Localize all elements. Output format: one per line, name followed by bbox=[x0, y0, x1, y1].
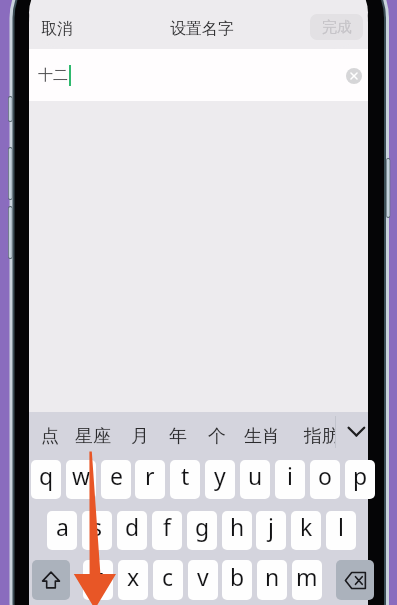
button[interactable]: y bbox=[205, 460, 235, 499]
staticText: o bbox=[318, 460, 332, 491]
button[interactable]: 生肖 bbox=[239, 419, 284, 453]
button[interactable]: v bbox=[188, 560, 218, 600]
button[interactable]: i bbox=[275, 460, 305, 499]
staticText: g bbox=[195, 511, 210, 542]
staticText: p bbox=[353, 460, 368, 491]
button[interactable]: u bbox=[240, 460, 270, 499]
button[interactable]: g bbox=[187, 511, 217, 550]
staticText: l bbox=[338, 511, 344, 542]
button[interactable]: r bbox=[135, 460, 165, 499]
button[interactable]: m bbox=[292, 560, 322, 600]
button[interactable]: l bbox=[326, 511, 356, 550]
staticText: y bbox=[214, 460, 226, 491]
button[interactable]: t bbox=[170, 460, 200, 499]
staticText: 指肪 bbox=[304, 425, 335, 448]
button[interactable]: 指肪 bbox=[299, 419, 335, 453]
button[interactable]: Backspace bbox=[336, 560, 374, 600]
staticText: w bbox=[72, 460, 91, 491]
staticText: f bbox=[163, 511, 171, 542]
button[interactable]: 年 bbox=[164, 419, 192, 453]
staticText: 完成 bbox=[322, 18, 352, 37]
staticText: h bbox=[230, 511, 245, 542]
staticText: q bbox=[39, 460, 54, 491]
staticText: r bbox=[145, 460, 155, 491]
button[interactable]: f bbox=[152, 511, 182, 550]
staticText: 设置名字 bbox=[170, 19, 234, 39]
staticText: 个 bbox=[208, 425, 226, 448]
staticText: i bbox=[287, 460, 293, 491]
button[interactable]: j bbox=[256, 511, 286, 550]
button[interactable]: s bbox=[82, 511, 112, 550]
button[interactable]: c bbox=[153, 560, 183, 600]
staticText: e bbox=[110, 460, 123, 491]
button[interactable]: p bbox=[345, 460, 375, 499]
button[interactable]: e bbox=[101, 460, 131, 499]
staticText: n bbox=[265, 561, 280, 592]
button[interactable]: Collapse candidates bbox=[340, 414, 373, 454]
staticText: 十二 bbox=[38, 66, 68, 85]
button[interactable]: Clear text bbox=[346, 68, 362, 84]
staticText: 星座 bbox=[75, 425, 111, 448]
staticText: m bbox=[296, 561, 318, 592]
button[interactable]: h bbox=[222, 511, 252, 550]
button[interactable]: 完成 bbox=[310, 14, 363, 40]
staticText: k bbox=[300, 511, 313, 542]
staticText: z bbox=[93, 561, 104, 592]
button[interactable]: z bbox=[83, 560, 113, 600]
button[interactable]: w bbox=[66, 460, 96, 499]
staticText: d bbox=[125, 511, 140, 542]
staticText: 取消 bbox=[41, 19, 73, 39]
button[interactable]: k bbox=[291, 511, 321, 550]
staticText: j bbox=[268, 511, 274, 542]
button[interactable]: x bbox=[118, 560, 148, 600]
button[interactable]: 月 bbox=[126, 419, 154, 453]
staticText: v bbox=[197, 561, 209, 592]
button[interactable]: n bbox=[257, 560, 287, 600]
button[interactable]: 个 bbox=[203, 419, 231, 453]
staticText: b bbox=[230, 561, 245, 592]
button[interactable]: a bbox=[47, 511, 77, 550]
staticText: s bbox=[91, 511, 103, 542]
staticText: u bbox=[248, 460, 263, 491]
button[interactable]: q bbox=[31, 460, 61, 499]
button[interactable]: o bbox=[310, 460, 340, 499]
staticText: 点 bbox=[41, 425, 59, 448]
staticText: t bbox=[181, 460, 190, 491]
button[interactable]: 取消 bbox=[37, 15, 77, 42]
button[interactable]: b bbox=[222, 560, 252, 600]
staticText: x bbox=[127, 561, 140, 592]
button[interactable]: 点 bbox=[34, 419, 65, 453]
staticText: c bbox=[162, 561, 174, 592]
staticText: 生肖 bbox=[244, 425, 280, 448]
button[interactable]: Shift bbox=[32, 560, 70, 600]
staticText: a bbox=[56, 511, 69, 542]
button[interactable]: d bbox=[117, 511, 147, 550]
staticText: 月 bbox=[131, 425, 149, 448]
button[interactable]: 星座 bbox=[70, 419, 115, 453]
staticText: 年 bbox=[169, 425, 187, 448]
